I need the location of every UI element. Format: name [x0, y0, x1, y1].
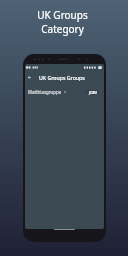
staticText: Category: [41, 22, 84, 36]
staticText: UK Groups: [37, 8, 88, 22]
staticText: UK Groups Groups: [39, 74, 85, 81]
staticText: Matthiasgruppe: [28, 89, 62, 95]
button[interactable]: JOIN: [86, 90, 99, 95]
button[interactable]: Matthiasgruppe: [25, 84, 104, 100]
button[interactable]: Back: [25, 71, 34, 84]
staticText: JOIN: [89, 90, 97, 95]
